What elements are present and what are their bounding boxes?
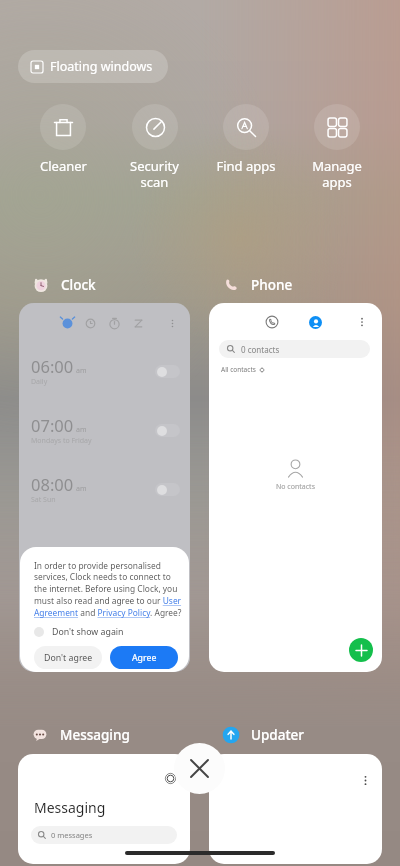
staticText: am xyxy=(76,484,87,494)
button[interactable]: Messaging xyxy=(32,726,130,744)
button[interactable]: Phone xyxy=(223,276,293,294)
staticText: Floating windows xyxy=(50,58,153,75)
staticText: am xyxy=(76,425,87,435)
button[interactable]: Contacts xyxy=(309,316,322,329)
staticText: Cleaner xyxy=(40,157,87,175)
button[interactable]: Alarm toggle xyxy=(155,424,180,437)
staticText: Don't agree xyxy=(44,652,93,664)
staticText: 0 messages xyxy=(51,830,93,840)
staticText: Clock xyxy=(61,276,96,294)
staticText: 08:00 xyxy=(31,473,74,495)
button[interactable]: Settings xyxy=(18,754,190,864)
staticText: Phone xyxy=(251,276,293,294)
staticText: Messaging xyxy=(34,798,106,817)
staticText: Security scan xyxy=(130,157,179,190)
staticText: Don't show again xyxy=(52,626,124,638)
staticText: am xyxy=(76,366,87,376)
staticText: Messaging xyxy=(60,726,130,744)
button[interactable]: Security scan xyxy=(109,104,200,190)
staticText: In order to provide personalised service… xyxy=(34,560,183,619)
button[interactable]: More options xyxy=(356,316,368,328)
staticText: Mondays to Friday xyxy=(31,436,92,446)
staticText: Sat Sun xyxy=(31,495,56,505)
button[interactable]: More options xyxy=(209,754,382,864)
button[interactable]: Floating windows xyxy=(18,50,168,83)
button[interactable]: Settings xyxy=(165,773,176,784)
button[interactable]: More options xyxy=(359,774,372,787)
staticText: 07:00 xyxy=(31,414,74,436)
staticText: No contacts xyxy=(276,482,315,492)
staticText: Updater xyxy=(251,726,305,744)
button[interactable]: Find apps xyxy=(200,104,291,175)
button[interactable]: 0 contacts xyxy=(219,340,370,358)
staticText: Manage apps xyxy=(312,157,362,190)
staticText: All contacts xyxy=(221,365,256,374)
button[interactable]: 0 messages xyxy=(31,826,177,844)
staticText: 06:00 xyxy=(31,355,74,377)
button[interactable]: 06:00 xyxy=(19,303,190,672)
button[interactable]: Updater xyxy=(223,726,305,744)
button[interactable]: Alarm toggle xyxy=(155,483,180,496)
button[interactable]: Don't show again xyxy=(34,626,124,638)
staticText: Agree xyxy=(132,652,157,664)
staticText: Find apps xyxy=(216,157,276,175)
button[interactable]: Cleaner xyxy=(17,104,109,175)
button[interactable]: Agree xyxy=(110,646,178,669)
staticText: Daily xyxy=(31,377,48,387)
button[interactable]: Don't agree xyxy=(34,646,102,669)
button[interactable]: Alarm toggle xyxy=(155,365,180,378)
button[interactable]: Dialler xyxy=(265,315,279,329)
button[interactable]: Add contact xyxy=(349,638,373,662)
button[interactable]: Close all xyxy=(174,743,225,794)
button[interactable]: Dialler xyxy=(209,303,382,672)
staticText: 0 contacts xyxy=(241,344,280,355)
button[interactable]: Clock xyxy=(33,276,96,294)
button[interactable]: Manage apps xyxy=(291,104,382,190)
